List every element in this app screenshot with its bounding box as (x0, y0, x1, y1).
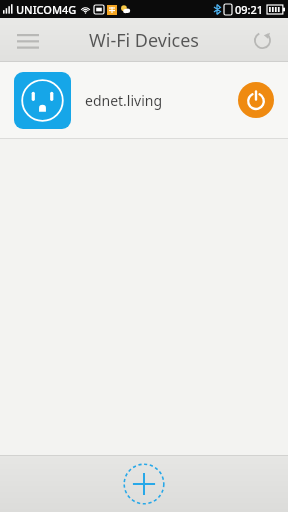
staticText: ednet.living (85, 91, 238, 110)
staticText: 09:21 (235, 2, 264, 17)
button[interactable]: Menu (6, 18, 50, 62)
button[interactable]: ednet.living (0, 62, 288, 139)
staticText: UNICOM4G (16, 2, 77, 17)
button[interactable]: Refresh (242, 20, 282, 60)
button[interactable]: Add device (121, 461, 167, 507)
staticText: Wi-Fi Devices (89, 28, 199, 53)
button[interactable]: Power toggle (238, 82, 274, 118)
